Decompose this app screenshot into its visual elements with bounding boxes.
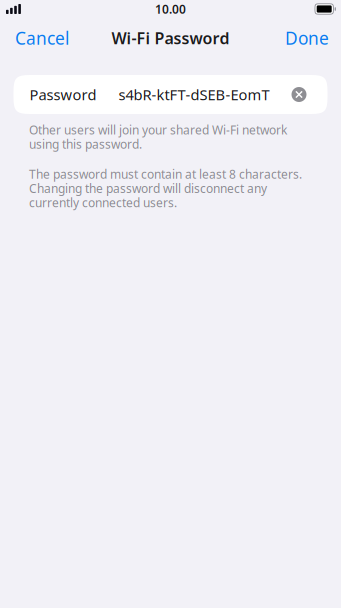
- staticText: 10.00: [155, 1, 186, 17]
- button[interactable]: Clear text: [291, 87, 306, 102]
- button[interactable]: Cancel: [15, 26, 69, 49]
- staticText: Cancel: [15, 26, 69, 49]
- staticText: Wi-Fi Password: [111, 27, 229, 49]
- staticText: Other users will join your shared Wi-Fi …: [29, 122, 287, 152]
- staticText: s4bR-ktFT-dSEB-EomT: [118, 85, 269, 104]
- staticText: Done: [285, 26, 329, 49]
- button[interactable]: Done: [285, 26, 329, 49]
- staticText: Password: [29, 85, 96, 104]
- button[interactable]: Password: [13, 75, 327, 114]
- staticText: The password must contain at least 8 cha…: [29, 166, 302, 211]
